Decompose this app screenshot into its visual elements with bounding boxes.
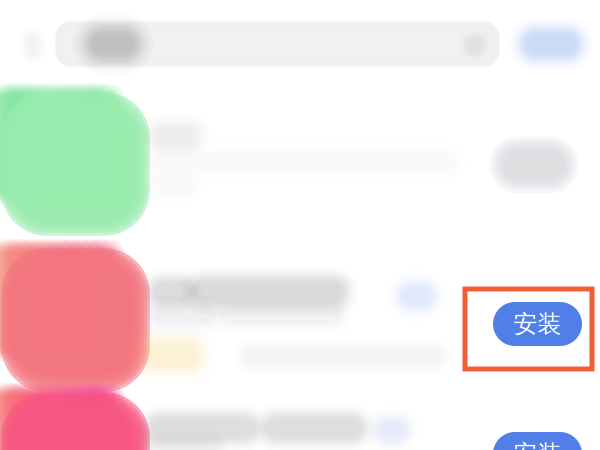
- button[interactable]: 安装: [493, 432, 582, 450]
- staticText: 安装: [513, 439, 561, 450]
- staticText: 安装: [513, 309, 561, 339]
- button[interactable]: 安装: [493, 302, 582, 346]
